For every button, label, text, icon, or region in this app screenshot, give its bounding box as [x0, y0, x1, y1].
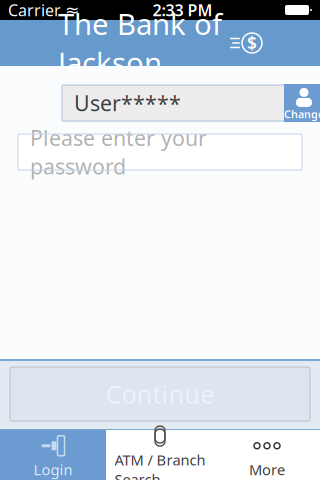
- staticText: The Bank of Jackson: [58, 4, 222, 82]
- staticText: Login: [33, 460, 72, 479]
- button[interactable]: Continue: [10, 367, 310, 421]
- staticText: 2:33 PM: [152, 0, 212, 21]
- staticText: More: [249, 460, 285, 479]
- staticText: ≈: [65, 0, 80, 20]
- staticText: Carrier: [8, 0, 61, 21]
- staticText: $: [247, 31, 257, 54]
- button[interactable]: Change: [284, 84, 320, 122]
- staticText: Continue: [105, 377, 214, 411]
- button[interactable]: ATM / Branch Search: [106, 430, 214, 480]
- staticText: Please enter your password: [30, 124, 207, 180]
- staticText: ATM / Branch Search: [114, 450, 205, 480]
- staticText: Change: [284, 107, 320, 121]
- staticText: User*****: [74, 89, 181, 117]
- button[interactable]: More: [214, 430, 320, 480]
- button[interactable]: Login: [0, 430, 106, 480]
